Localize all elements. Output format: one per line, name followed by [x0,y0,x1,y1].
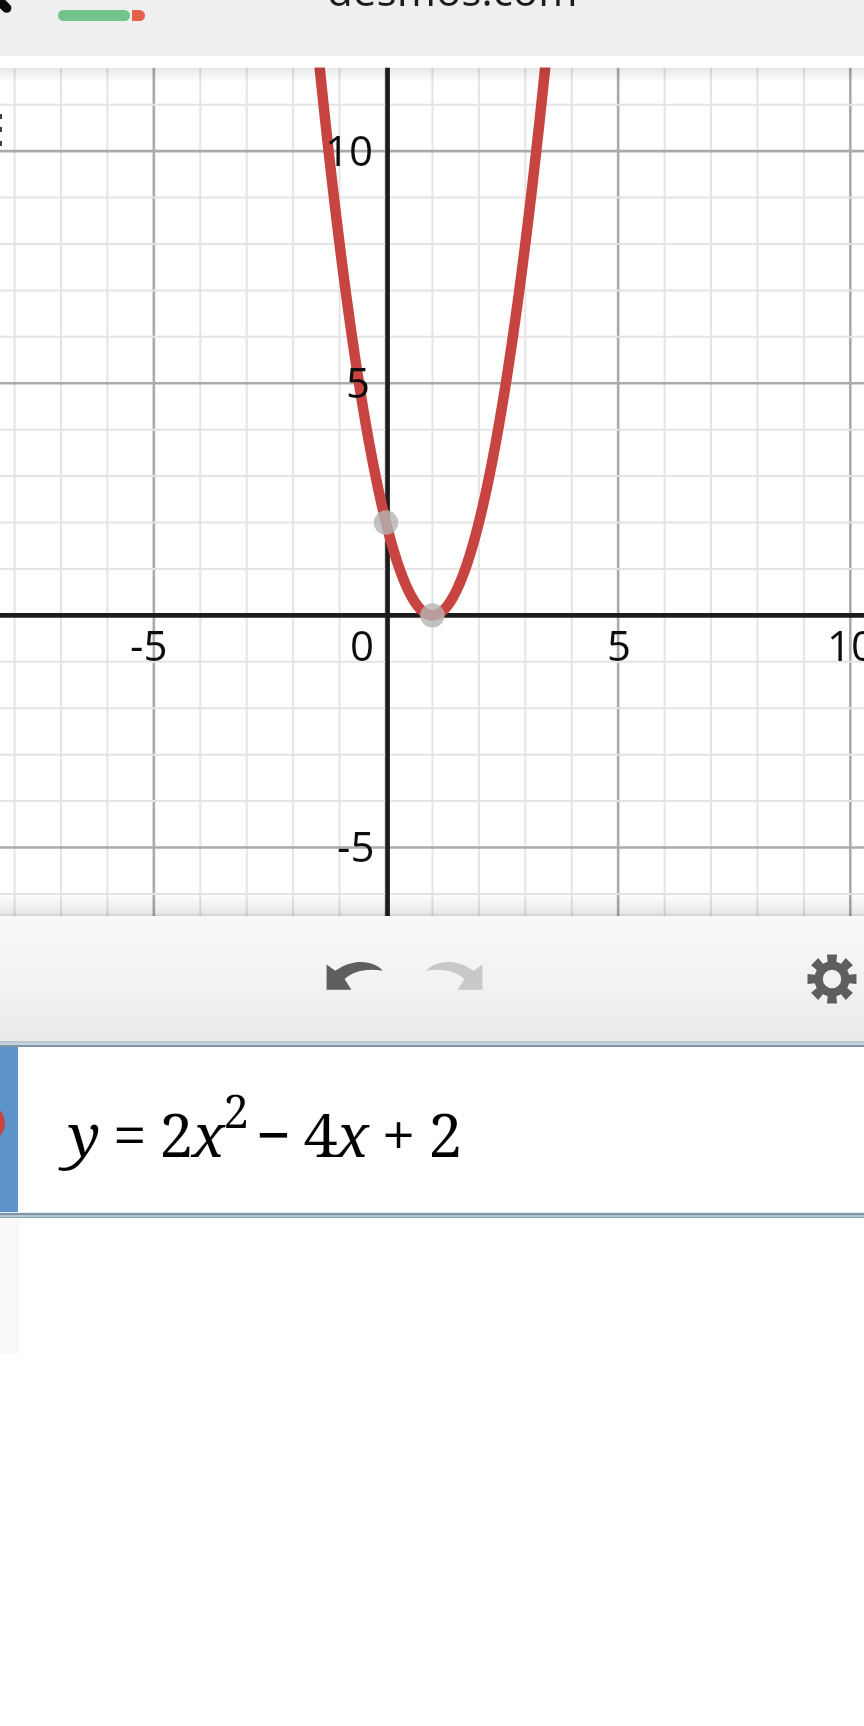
staticText: 10 [325,121,374,178]
button[interactable]: Show expression list [0,108,2,152]
button[interactable]: Undo [302,934,407,1014]
staticText: y = 2x2 − 4x + 2 [68,1079,461,1175]
button[interactable]: Settings [787,934,864,1022]
staticText: -5 [337,817,375,874]
staticText: -5 [130,616,168,673]
button[interactable]: Redo [402,934,507,1014]
staticText: desmos.com [327,0,578,17]
staticText: 10 [827,616,864,673]
staticText: 0 [350,616,375,673]
button[interactable]: y = 2x2 − 4x + 2 [0,1047,864,1212]
staticText: 5 [607,616,632,673]
staticText: 5 [346,353,371,410]
button[interactable]: Back [0,0,11,7]
